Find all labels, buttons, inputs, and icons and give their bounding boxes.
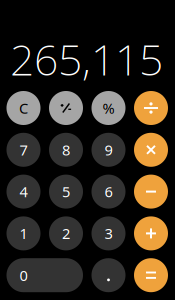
button[interactable]: 8 (49, 133, 83, 167)
staticText: 4 (19, 182, 27, 201)
button[interactable]: Divide (134, 91, 168, 125)
button[interactable]: Equals (134, 258, 168, 292)
button[interactable]: Plus minus (49, 91, 83, 125)
button[interactable]: Multiply (134, 133, 168, 167)
staticText: 9 (104, 140, 112, 160)
staticText: 8 (62, 140, 70, 160)
staticText: 7 (19, 140, 27, 160)
staticText: C (19, 98, 28, 118)
staticText: 1 (19, 224, 27, 243)
button[interactable]: 7 (6, 133, 40, 167)
button[interactable]: 4 (6, 175, 40, 209)
button[interactable]: Add (134, 216, 168, 250)
staticText: 3 (104, 224, 112, 243)
button[interactable]: C (6, 91, 40, 125)
staticText: 0 (19, 265, 27, 285)
button[interactable]: % (91, 91, 125, 125)
button[interactable]: 5 (49, 175, 83, 209)
button[interactable]: 0 (6, 258, 83, 292)
button[interactable]: 6 (91, 175, 125, 209)
button[interactable]: Decimal point (91, 258, 125, 292)
button[interactable]: 2 (49, 216, 83, 250)
staticText: 265,115 (10, 31, 163, 87)
staticText: 5 (62, 182, 70, 201)
staticText: 6 (104, 182, 112, 201)
button[interactable]: Subtract (134, 175, 168, 209)
button[interactable]: 1 (6, 216, 40, 250)
staticText: 2 (62, 224, 70, 243)
button[interactable]: 3 (91, 216, 125, 250)
button[interactable]: 9 (91, 133, 125, 167)
staticText: % (102, 98, 114, 118)
